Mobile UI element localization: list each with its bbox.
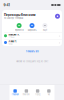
button[interactable]: Перевести xyxy=(13,23,25,31)
button[interactable]: Profile xyxy=(55,14,60,19)
staticText: Сбер xyxy=(8,43,12,45)
button[interactable]: Запросить xyxy=(25,23,38,31)
staticText: 9:41 xyxy=(3,3,9,7)
button[interactable]: Анна П. xyxy=(2,39,62,46)
staticText: Никому не сообщайте код из СМС xyxy=(16,60,48,63)
button[interactable]: Город xyxy=(32,89,43,96)
staticText: Город xyxy=(35,93,40,96)
staticText: Ещё xyxy=(43,29,47,31)
staticText: Переводы близким xyxy=(4,13,35,17)
staticText: Чат xyxy=(47,93,50,96)
staticText: Максим К. xyxy=(8,33,20,36)
staticText: › xyxy=(59,41,60,44)
button[interactable]: Главная xyxy=(9,89,21,96)
button[interactable]: Платежи xyxy=(21,89,32,96)
button[interactable]: Ещё xyxy=(38,23,51,31)
staticText: › xyxy=(59,34,60,37)
button[interactable]: Показать все xyxy=(25,47,38,56)
staticText: Анна П. xyxy=(8,40,17,43)
staticText: Т-Банк xyxy=(8,36,14,38)
staticText: Главная xyxy=(12,93,19,96)
button[interactable]: Чат xyxy=(43,89,54,96)
staticText: Показать все xyxy=(25,50,38,53)
staticText: Запросить xyxy=(27,29,36,31)
staticText: Перевести xyxy=(15,29,24,31)
staticText: Платежи xyxy=(22,93,30,96)
button[interactable]: Максим К. xyxy=(2,32,62,39)
staticText: по номеру телефона xyxy=(4,17,23,19)
